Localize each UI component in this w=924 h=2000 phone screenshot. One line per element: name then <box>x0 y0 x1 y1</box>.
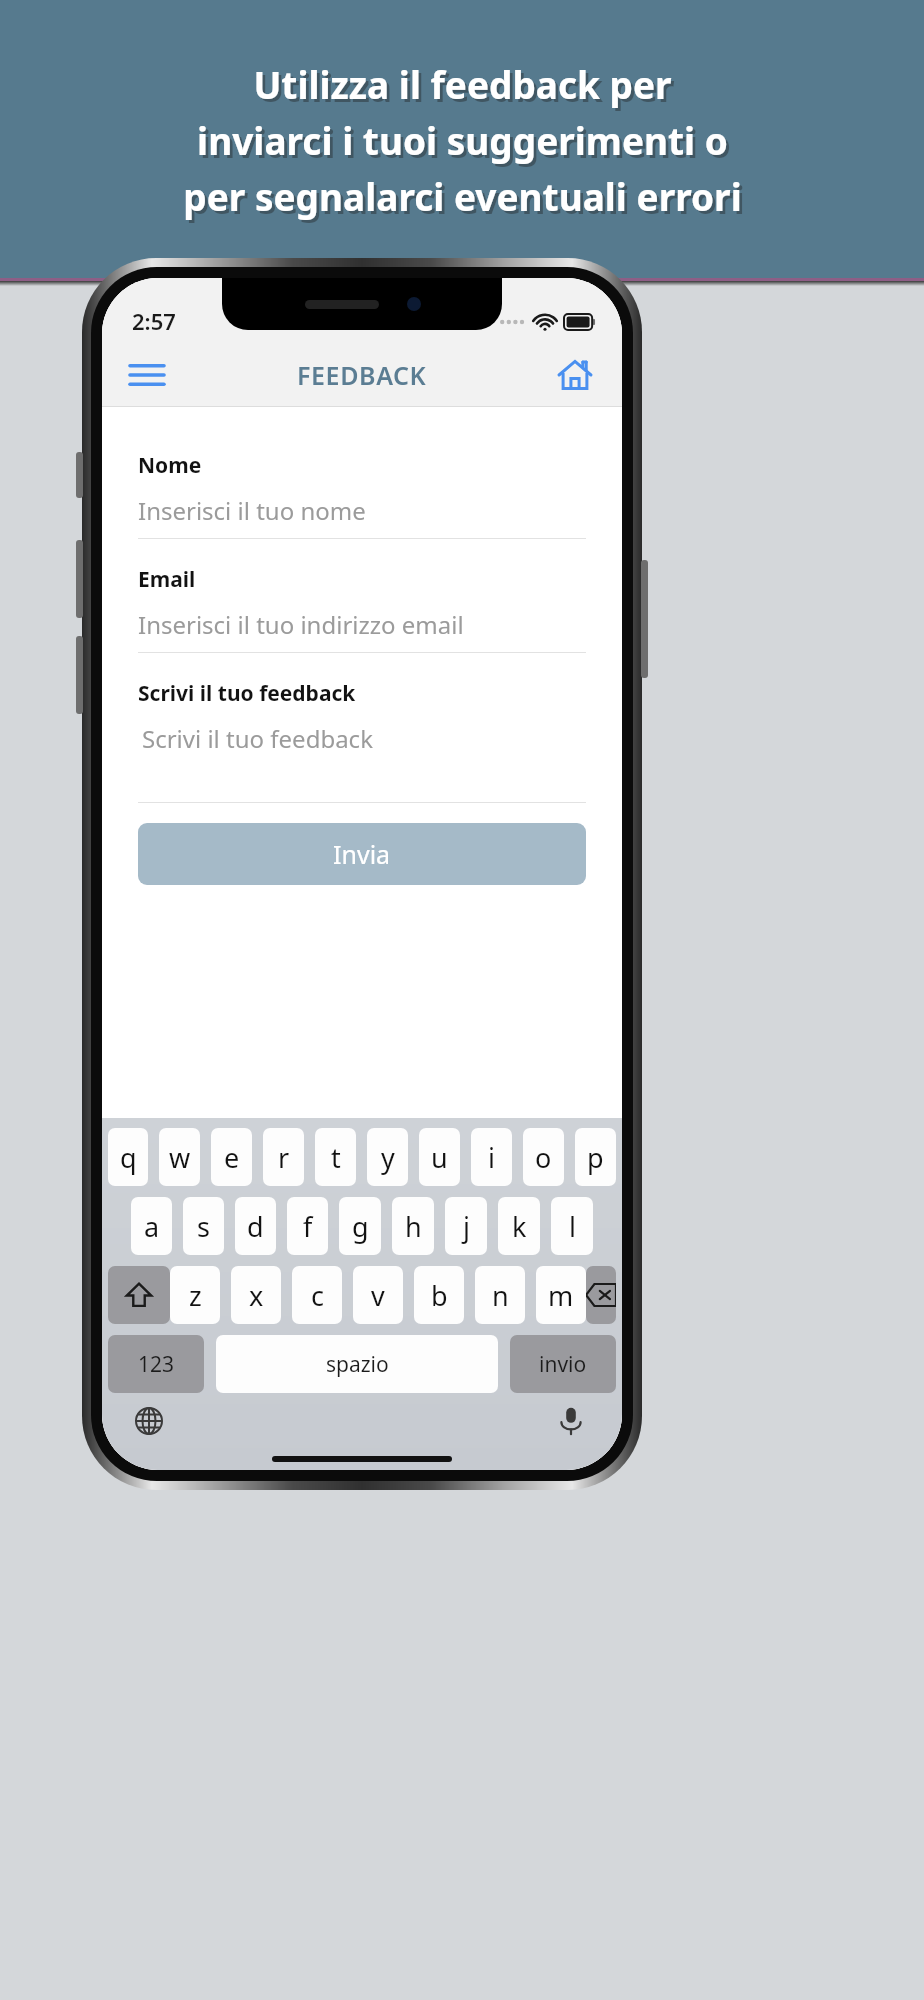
button[interactable]: u <box>419 1128 460 1186</box>
staticText: m <box>548 1277 574 1314</box>
staticText: p <box>587 1139 604 1176</box>
button[interactable]: g <box>339 1197 381 1255</box>
staticText: Inserisci il tuo indirizzo email <box>138 608 464 641</box>
staticText: invio <box>539 1350 587 1379</box>
staticText: y <box>381 1139 395 1176</box>
button[interactable]: s <box>183 1197 224 1255</box>
staticText: w <box>169 1139 191 1176</box>
button[interactable]: 123 <box>108 1335 204 1393</box>
button[interactable] <box>586 1266 616 1324</box>
staticText: Nome <box>138 451 202 480</box>
button[interactable]: Inserisci il tuo nome <box>138 482 586 538</box>
button[interactable]: x <box>231 1266 281 1324</box>
staticText: x <box>249 1277 264 1314</box>
button[interactable]: y <box>367 1128 408 1186</box>
button[interactable]: e <box>211 1128 252 1186</box>
button[interactable]: d <box>235 1197 276 1255</box>
button[interactable]: v <box>353 1266 403 1324</box>
staticText: o <box>535 1139 552 1176</box>
staticText: Scrivi il tuo feedback <box>142 722 373 755</box>
staticText: per segnalarci eventuali errori <box>183 171 742 221</box>
button[interactable]: w <box>159 1128 200 1186</box>
staticText: inviarci i tuoi suggerimenti o <box>197 115 728 165</box>
staticText: b <box>431 1277 448 1314</box>
button[interactable]: l <box>551 1197 593 1255</box>
staticText: e <box>224 1139 240 1176</box>
staticText: Utilizza il feedback per <box>253 59 672 109</box>
staticText: a <box>144 1208 160 1245</box>
button[interactable]: j <box>445 1197 487 1255</box>
button[interactable]: a <box>131 1197 172 1255</box>
staticText: q <box>120 1139 137 1176</box>
staticText: FEEDBACK <box>297 358 427 392</box>
button[interactable]: Dictation <box>548 1398 594 1444</box>
staticText: inviarci i tuoi suggerimenti o <box>200 118 731 168</box>
button[interactable]: n <box>475 1266 525 1324</box>
staticText: j <box>463 1208 470 1245</box>
button[interactable]: i <box>471 1128 512 1186</box>
staticText: 123 <box>138 1350 175 1379</box>
button[interactable]: Invia <box>138 823 586 885</box>
staticText: Email <box>138 565 196 594</box>
staticText: f <box>303 1208 313 1245</box>
staticText: d <box>247 1208 264 1245</box>
staticText: v <box>371 1277 385 1314</box>
staticText: Utilizza il feedback per <box>256 62 675 112</box>
button[interactable]: Home <box>546 346 604 404</box>
button[interactable]: k <box>498 1197 540 1255</box>
staticText: t <box>331 1139 341 1176</box>
staticText: n <box>492 1277 509 1314</box>
button[interactable]: z <box>170 1266 220 1324</box>
staticText: Invia <box>333 837 391 871</box>
button[interactable]: o <box>523 1128 564 1186</box>
staticText: k <box>512 1208 527 1245</box>
button[interactable]: m <box>536 1266 586 1324</box>
button[interactable]: t <box>315 1128 356 1186</box>
button[interactable]: r <box>263 1128 304 1186</box>
staticText: Inserisci il tuo nome <box>138 494 366 527</box>
button[interactable]: Scrivi il tuo feedback <box>138 710 586 802</box>
staticText: i <box>488 1139 495 1176</box>
button[interactable] <box>108 1266 170 1324</box>
button[interactable]: f <box>287 1197 328 1255</box>
staticText: 2:57 <box>132 306 176 336</box>
button[interactable]: spazio <box>216 1335 498 1393</box>
staticText: per segnalarci eventuali errori <box>186 174 745 224</box>
button[interactable]: Menu <box>118 346 176 404</box>
button[interactable]: b <box>414 1266 464 1324</box>
button[interactable]: q <box>108 1128 148 1186</box>
staticText: spazio <box>326 1350 389 1379</box>
button[interactable]: c <box>292 1266 342 1324</box>
staticText: h <box>405 1208 422 1245</box>
staticText: l <box>569 1208 576 1245</box>
button[interactable]: Change keyboard <box>126 1398 172 1444</box>
staticText: c <box>311 1277 324 1314</box>
button[interactable]: p <box>575 1128 616 1186</box>
staticText: g <box>352 1208 369 1245</box>
button[interactable]: h <box>392 1197 434 1255</box>
staticText: r <box>278 1139 290 1176</box>
staticText: z <box>189 1277 202 1314</box>
button[interactable]: Inserisci il tuo indirizzo email <box>138 596 586 652</box>
staticText: Scrivi il tuo feedback <box>138 679 356 708</box>
button[interactable]: invio <box>510 1335 616 1393</box>
staticText: u <box>431 1139 448 1176</box>
staticText: s <box>197 1208 210 1245</box>
